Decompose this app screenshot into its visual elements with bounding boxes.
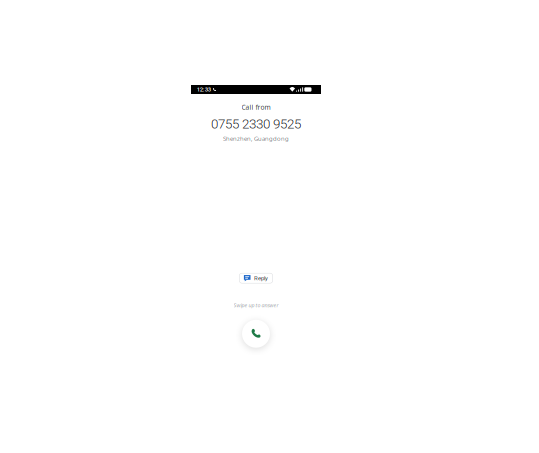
button[interactable]: Reply — [239, 273, 273, 283]
staticText: Shenzhen, Guangdong — [223, 134, 289, 143]
staticText: 0755 2330 9525 — [211, 116, 301, 132]
staticText: Reply — [254, 275, 268, 282]
button[interactable]: Answer call — [242, 320, 270, 348]
staticText: Call from — [241, 102, 270, 112]
staticText: Swipe up to answer — [233, 301, 278, 309]
staticText: 12:33 — [197, 86, 211, 93]
